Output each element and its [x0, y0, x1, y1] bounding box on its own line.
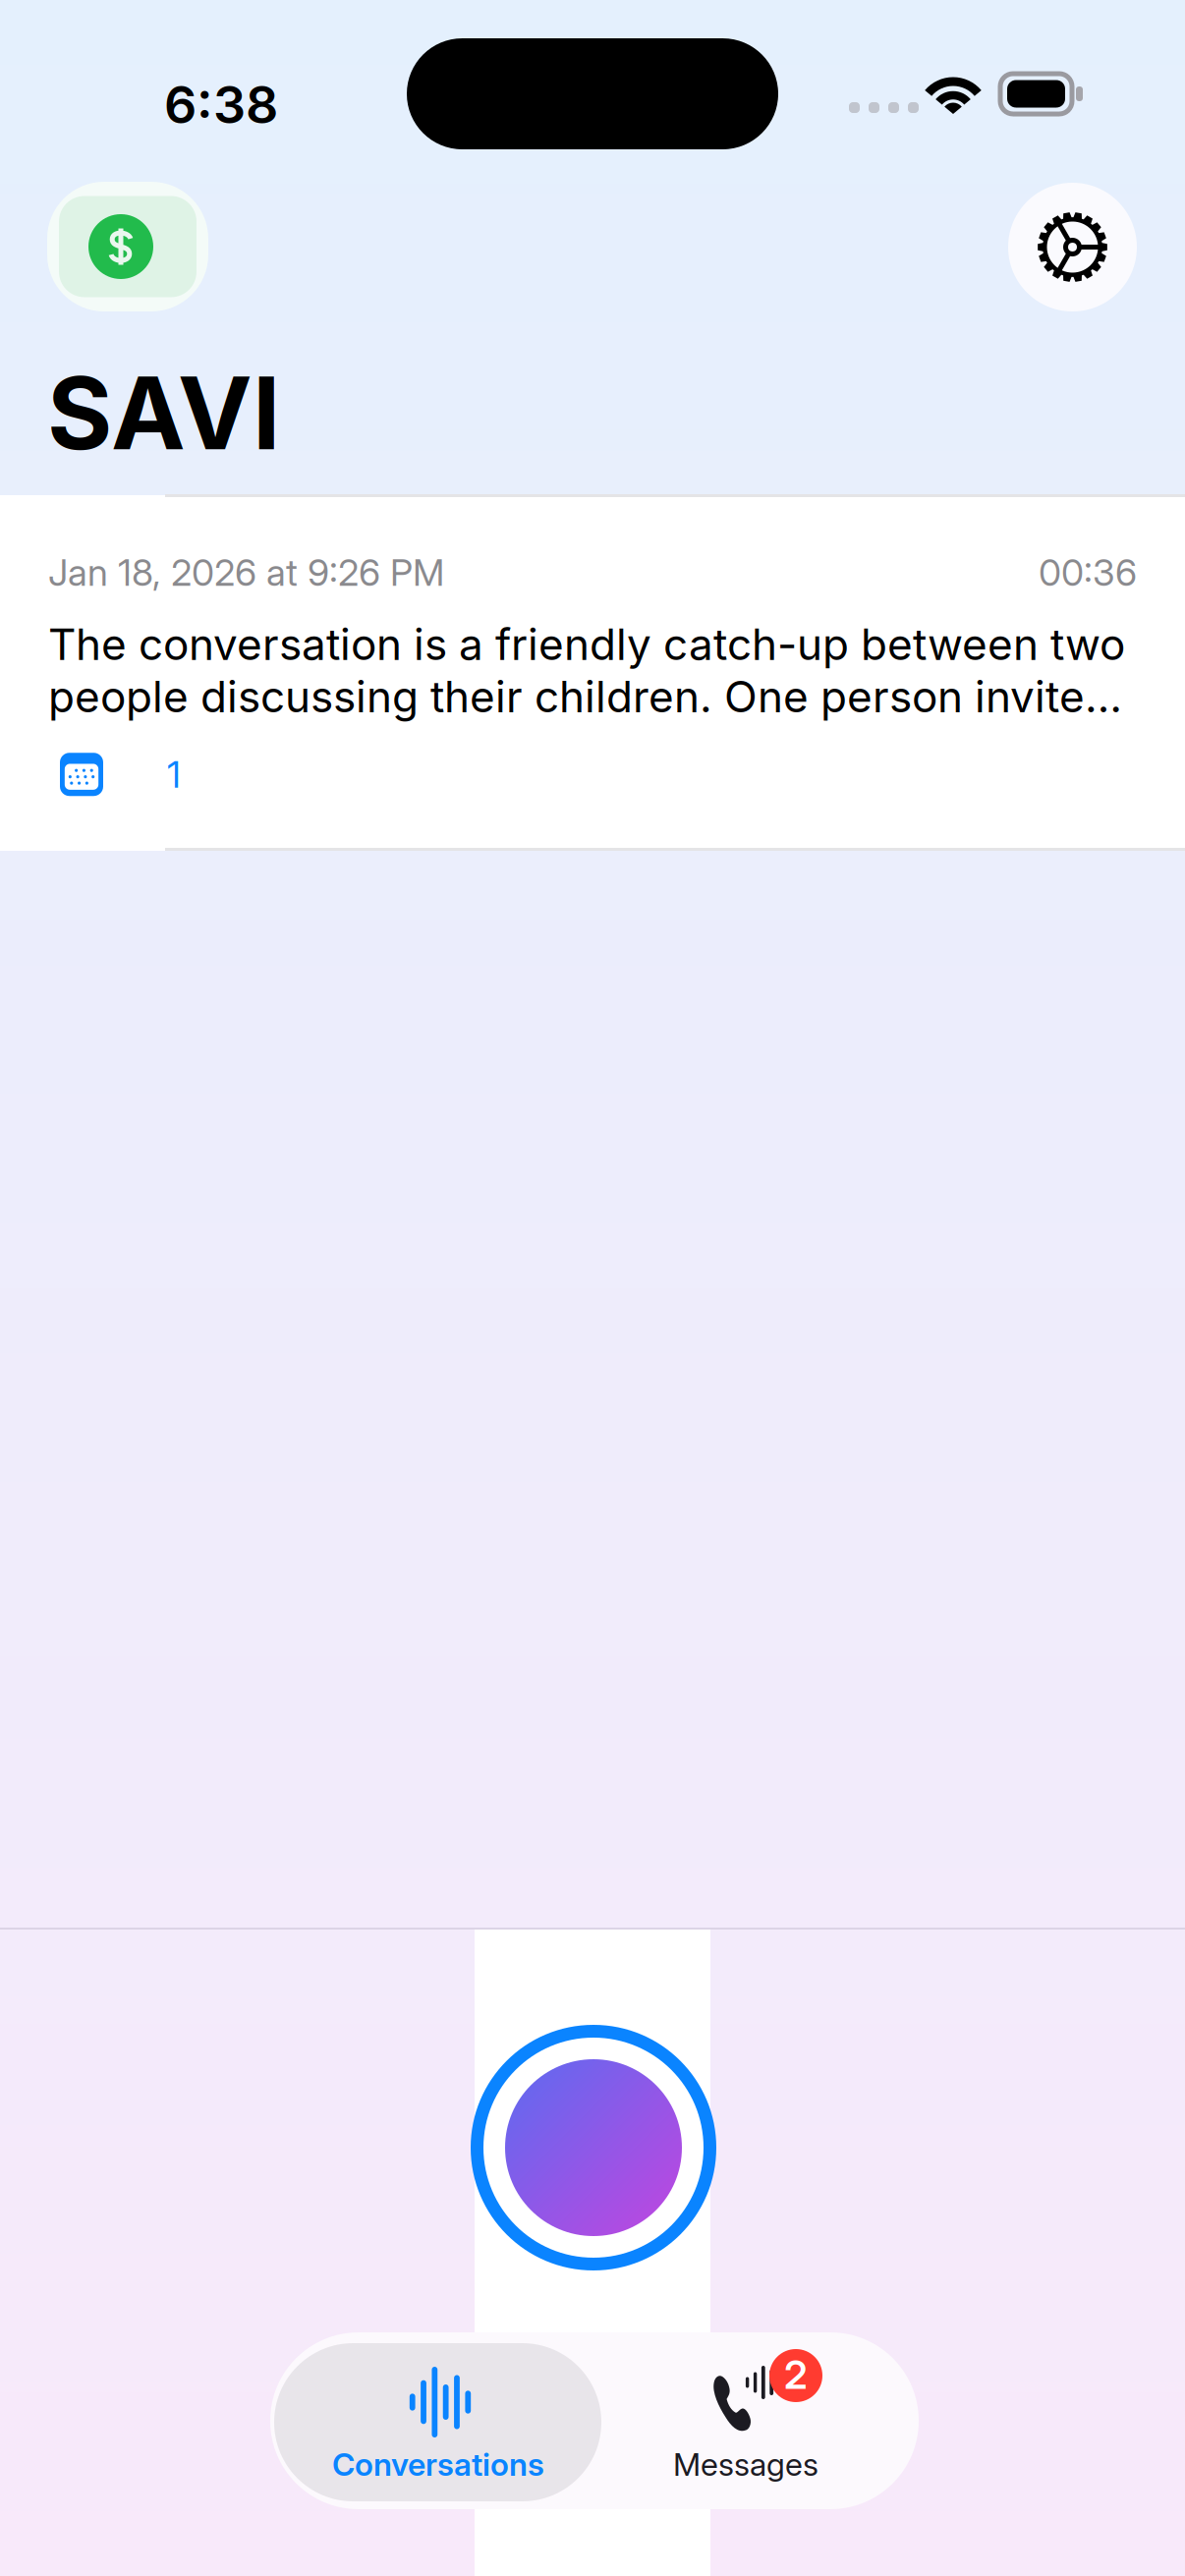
- button[interactable]: Balance: [47, 182, 208, 311]
- button[interactable]: Record: [471, 2025, 716, 2270]
- staticText: Jan 18, 2026 at 9:26 PM: [48, 550, 444, 595]
- button[interactable]: Jan 18, 2026 at 9:26 PM: [48, 550, 1137, 874]
- staticText: 2: [784, 2351, 808, 2398]
- staticText: Messages: [673, 2445, 818, 2483]
- button[interactable]: Settings: [1008, 183, 1137, 311]
- staticText: Conversations: [332, 2445, 544, 2483]
- button[interactable]: Conversations: [274, 2343, 601, 2501]
- staticText: 1: [167, 752, 181, 797]
- staticText: The conversation is a friendly catch-up …: [48, 618, 1137, 723]
- staticText: SAVI: [47, 353, 280, 473]
- staticText: 6:38: [164, 74, 278, 135]
- button[interactable]: 2: [603, 2343, 911, 2501]
- staticText: 00:36: [1039, 550, 1137, 595]
